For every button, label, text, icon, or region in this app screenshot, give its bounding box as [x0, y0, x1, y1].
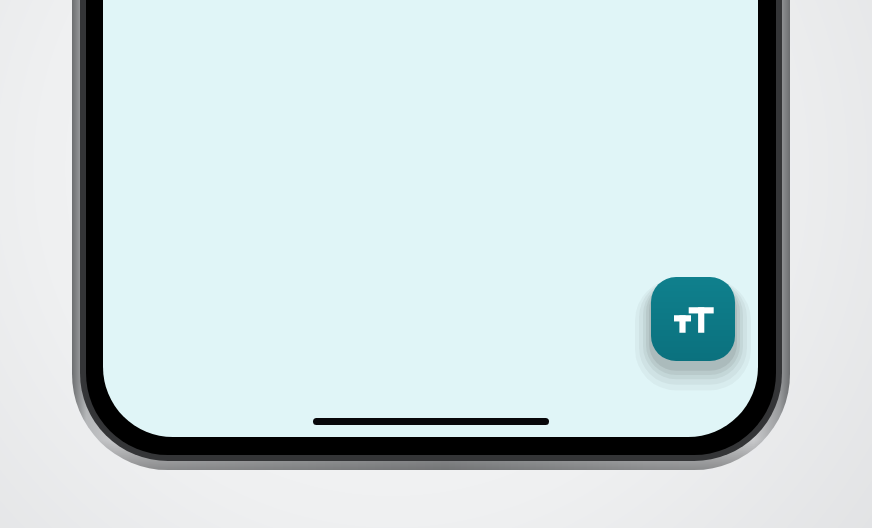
- button[interactable]: Change text size: [651, 277, 735, 361]
